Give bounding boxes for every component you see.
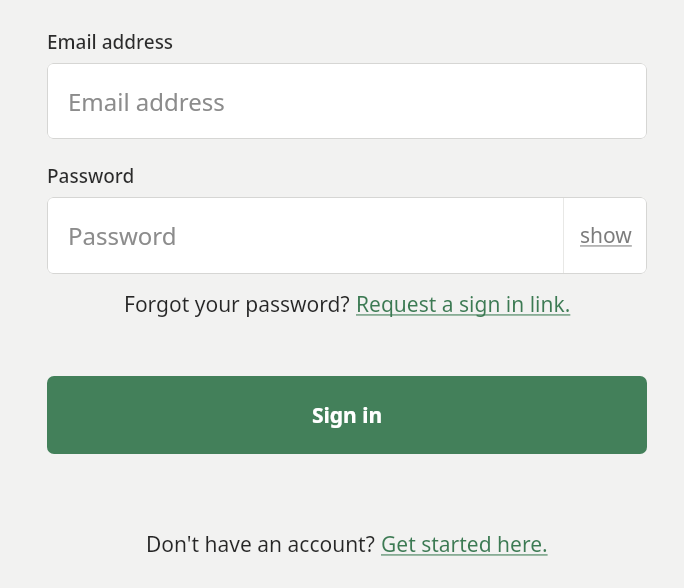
button[interactable]: Email address <box>47 63 647 139</box>
staticText: Get started here. <box>381 530 548 559</box>
staticText: Email address <box>68 85 225 118</box>
staticText: Forgot your password? <box>124 290 356 319</box>
staticText: Don't have an account? <box>146 530 381 559</box>
button[interactable]: Show password <box>564 197 647 274</box>
staticText: show <box>580 221 632 250</box>
staticText: Email address <box>47 29 174 55</box>
button[interactable]: Password <box>47 197 563 274</box>
staticText: Password <box>47 163 135 189</box>
staticText: Request a sign in link. <box>356 290 571 319</box>
button[interactable]: Request a sign in link. <box>356 290 571 319</box>
button[interactable]: Get started here. <box>381 530 548 559</box>
staticText: Sign in <box>312 401 383 430</box>
button[interactable]: Sign in <box>47 376 647 454</box>
staticText: Password <box>68 219 177 252</box>
